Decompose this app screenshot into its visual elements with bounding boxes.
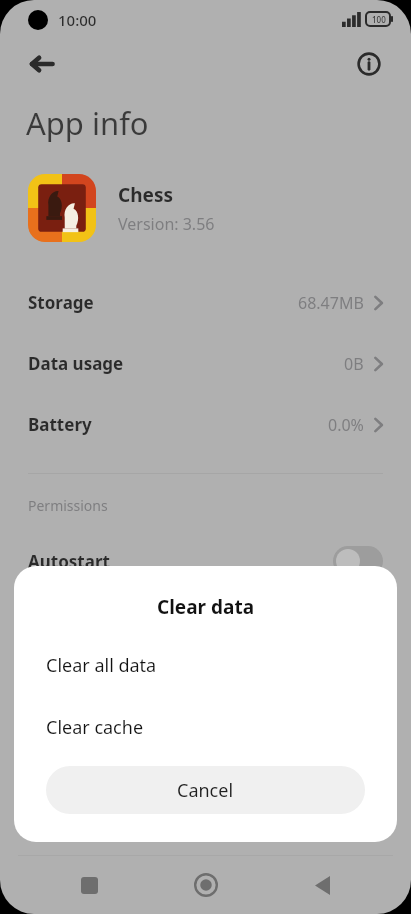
- staticText: Permissions: [28, 496, 108, 515]
- staticText: Version: 3.56: [118, 213, 215, 235]
- staticText: App info: [26, 102, 149, 144]
- button[interactable]: Back: [16, 38, 68, 90]
- button[interactable]: Back: [294, 857, 350, 913]
- staticText: Battery: [28, 413, 92, 436]
- staticText: 10:00: [58, 10, 97, 30]
- button[interactable]: Clear cache: [14, 714, 397, 740]
- button[interactable]: Storage: [0, 272, 411, 333]
- button[interactable]: Recent apps: [61, 857, 117, 913]
- staticText: Chess: [118, 182, 173, 208]
- button[interactable]: Cancel: [46, 766, 365, 814]
- staticText: 0B: [344, 353, 364, 375]
- button[interactable]: Clear all data: [14, 652, 397, 678]
- button[interactable]: Autostart: [0, 533, 411, 589]
- staticText: Clear all data: [46, 653, 157, 678]
- button[interactable]: Chess app icon: [28, 174, 96, 242]
- staticText: Autostart: [28, 550, 110, 573]
- staticText: Storage: [28, 291, 94, 314]
- button[interactable]: Data usage: [0, 333, 411, 394]
- staticText: Clear cache: [46, 715, 144, 740]
- staticText: 0.0%: [328, 414, 364, 436]
- staticText: 100: [372, 14, 386, 25]
- staticText: Cancel: [177, 778, 234, 803]
- staticText: Data usage: [28, 352, 124, 375]
- button[interactable]: Home: [178, 857, 234, 913]
- button[interactable]: App details: [343, 38, 395, 90]
- staticText: Clear data: [157, 594, 255, 620]
- staticText: 68.47MB: [298, 292, 364, 314]
- button[interactable]: Battery: [0, 394, 411, 455]
